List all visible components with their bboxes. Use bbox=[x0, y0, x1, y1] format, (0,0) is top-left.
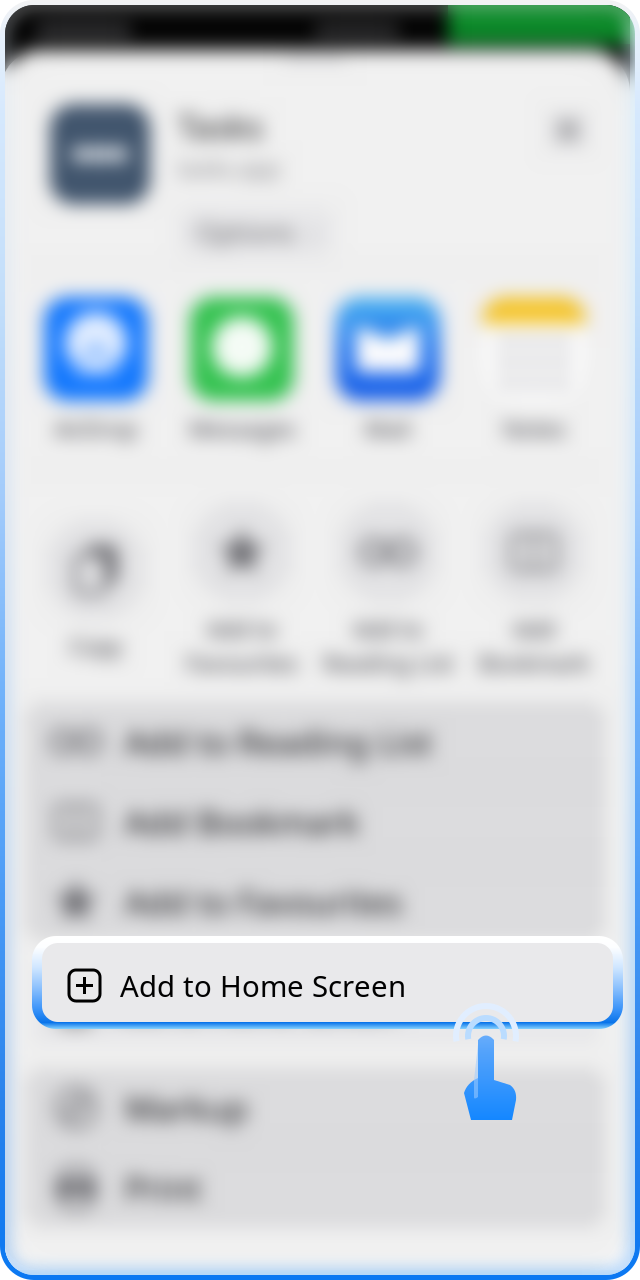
staticText: Add Bookmark bbox=[125, 800, 359, 844]
staticText: Add to bbox=[353, 614, 423, 644]
button[interactable]: Add to bbox=[169, 502, 315, 678]
button[interactable]: Add to bbox=[315, 502, 461, 678]
staticText: Print bbox=[125, 1166, 201, 1210]
button[interactable]: Print bbox=[25, 1148, 605, 1227]
button[interactable]: AirDrop bbox=[23, 297, 169, 444]
staticText: Copy bbox=[69, 631, 122, 661]
staticText: Tasks bbox=[178, 104, 263, 148]
button[interactable]: Copy bbox=[23, 519, 169, 661]
staticText: Add to bbox=[207, 614, 277, 644]
staticText: Bookmark bbox=[479, 648, 589, 678]
staticText: tasks.app bbox=[178, 153, 280, 184]
staticText: Mail bbox=[365, 414, 411, 444]
button[interactable]: Mail bbox=[315, 297, 461, 444]
button[interactable]: Add to Favourites bbox=[25, 862, 605, 941]
staticText: Reading List bbox=[322, 648, 453, 678]
button[interactable]: Notes bbox=[461, 297, 607, 444]
button[interactable]: Add to Reading List bbox=[25, 702, 605, 781]
staticText: Favourites bbox=[186, 648, 298, 678]
button[interactable]: Markup bbox=[25, 1068, 605, 1147]
button[interactable]: Add Bookmark bbox=[25, 782, 605, 861]
staticText: Add to Home Screen bbox=[111, 988, 397, 1027]
staticText: Add to Reading List bbox=[125, 720, 432, 764]
button[interactable]: Close bbox=[546, 108, 590, 152]
staticText: Markup bbox=[125, 1086, 248, 1130]
button[interactable]: Add bbox=[461, 502, 607, 678]
staticText: Options bbox=[196, 214, 295, 250]
staticText: AirDrop bbox=[54, 414, 137, 444]
staticText: Add to Home Screen bbox=[120, 966, 406, 1005]
button[interactable]: Add to Home Screen bbox=[42, 943, 613, 1022]
staticText: Messages bbox=[188, 414, 295, 444]
staticText: Notes bbox=[502, 414, 565, 444]
button[interactable]: Add to Home Screen bbox=[33, 965, 597, 1044]
staticText: Add bbox=[513, 614, 555, 644]
button[interactable]: Options bbox=[178, 207, 334, 258]
button[interactable]: Messages bbox=[169, 297, 315, 444]
staticText: Add to Favourites bbox=[125, 880, 402, 924]
